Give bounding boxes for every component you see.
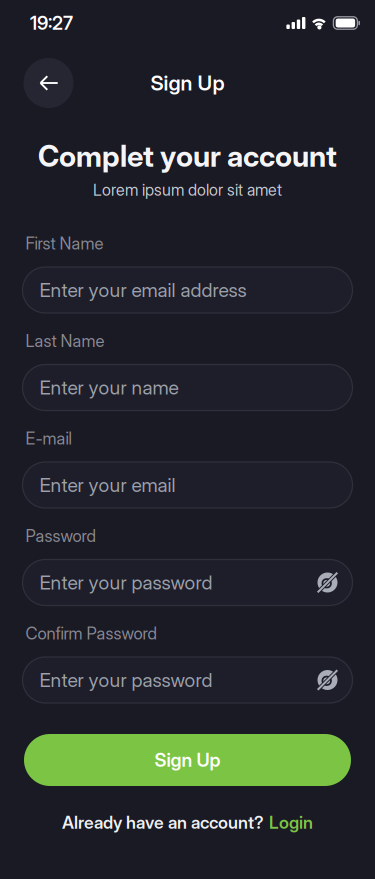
staticText: Password [25,526,95,546]
staticText: Enter your name [39,376,178,399]
staticText: E-mail [25,428,71,449]
staticText: First Name [25,233,103,254]
button[interactable]: Enter your name [22,364,352,410]
staticText: Login [269,812,313,833]
button[interactable] [316,571,338,593]
staticText: Enter your email [39,473,175,497]
staticText: Lorem ipsum dolor sit amet [93,180,282,200]
staticText: Complet your account [38,138,337,174]
button[interactable]: Enter your password [22,657,352,703]
button[interactable]: Sign Up [24,734,351,786]
staticText: Confirm Password [25,623,156,644]
button[interactable]: Enter your password [22,559,352,605]
staticText: Last Name [25,331,104,351]
button[interactable]: Enter your email address [22,267,352,313]
button[interactable]: Enter your email [22,462,352,508]
staticText: Enter your password [39,571,212,594]
staticText: Enter your email address [39,278,246,302]
staticText: Already have an account? [62,812,264,833]
button[interactable] [316,669,338,691]
staticText: Enter your password [39,668,212,692]
button[interactable]: Login [269,812,313,833]
staticText: Sign Up [154,749,220,771]
staticText: 19:27 [30,12,73,34]
button[interactable] [23,58,73,108]
staticText: Sign Up [150,70,224,95]
